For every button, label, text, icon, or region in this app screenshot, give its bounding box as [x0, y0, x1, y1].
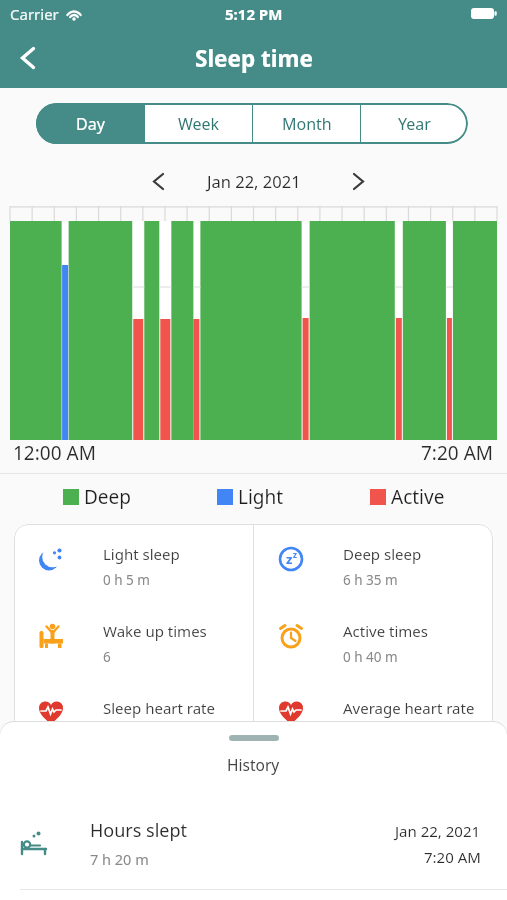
button[interactable] [345, 168, 371, 194]
staticText: 7:20 AM [421, 440, 494, 466]
button[interactable]: Month [253, 103, 360, 144]
staticText: 0 h 40 m [343, 648, 398, 662]
staticText: Carrier [10, 4, 59, 24]
staticText: 6 h 35 m [343, 571, 398, 585]
staticText: 0 h 5 m [103, 571, 150, 585]
staticText: Month [282, 113, 332, 135]
staticText: Light [238, 484, 284, 510]
staticText: Active times [343, 621, 429, 641]
staticText: 6 [103, 648, 111, 662]
staticText: Week [178, 113, 220, 135]
staticText: Light sleep [103, 544, 180, 564]
staticText: Jan 22, 2021 [207, 170, 301, 192]
button[interactable]: Day [36, 103, 144, 144]
staticText: Sleep heart rate [103, 698, 215, 718]
staticText: z [286, 550, 293, 568]
staticText: Wake up times [103, 621, 207, 641]
button[interactable]: Hours slept [20, 818, 481, 869]
staticText: Day [76, 113, 105, 135]
staticText: Sleep time [195, 43, 313, 74]
staticText: z [293, 549, 297, 560]
staticText: History [227, 754, 280, 775]
staticText: 7 h 20 m [90, 849, 149, 869]
staticText: Active [391, 484, 445, 510]
button[interactable] [145, 168, 171, 194]
staticText: Hours slept [90, 818, 188, 843]
button[interactable] [10, 40, 46, 76]
staticText: 12:00 AM [13, 440, 96, 466]
staticText: Jan 22, 2021 [395, 821, 481, 841]
staticText: 7:20 AM [424, 847, 481, 867]
staticText: Deep [84, 484, 131, 510]
staticText: Year [398, 113, 431, 135]
button[interactable]: Week [145, 103, 252, 144]
staticText: Average heart rate [343, 698, 475, 718]
button[interactable]: Year [361, 103, 468, 144]
staticText: Deep sleep [343, 544, 422, 564]
staticText: 5:12 PM [225, 4, 283, 24]
